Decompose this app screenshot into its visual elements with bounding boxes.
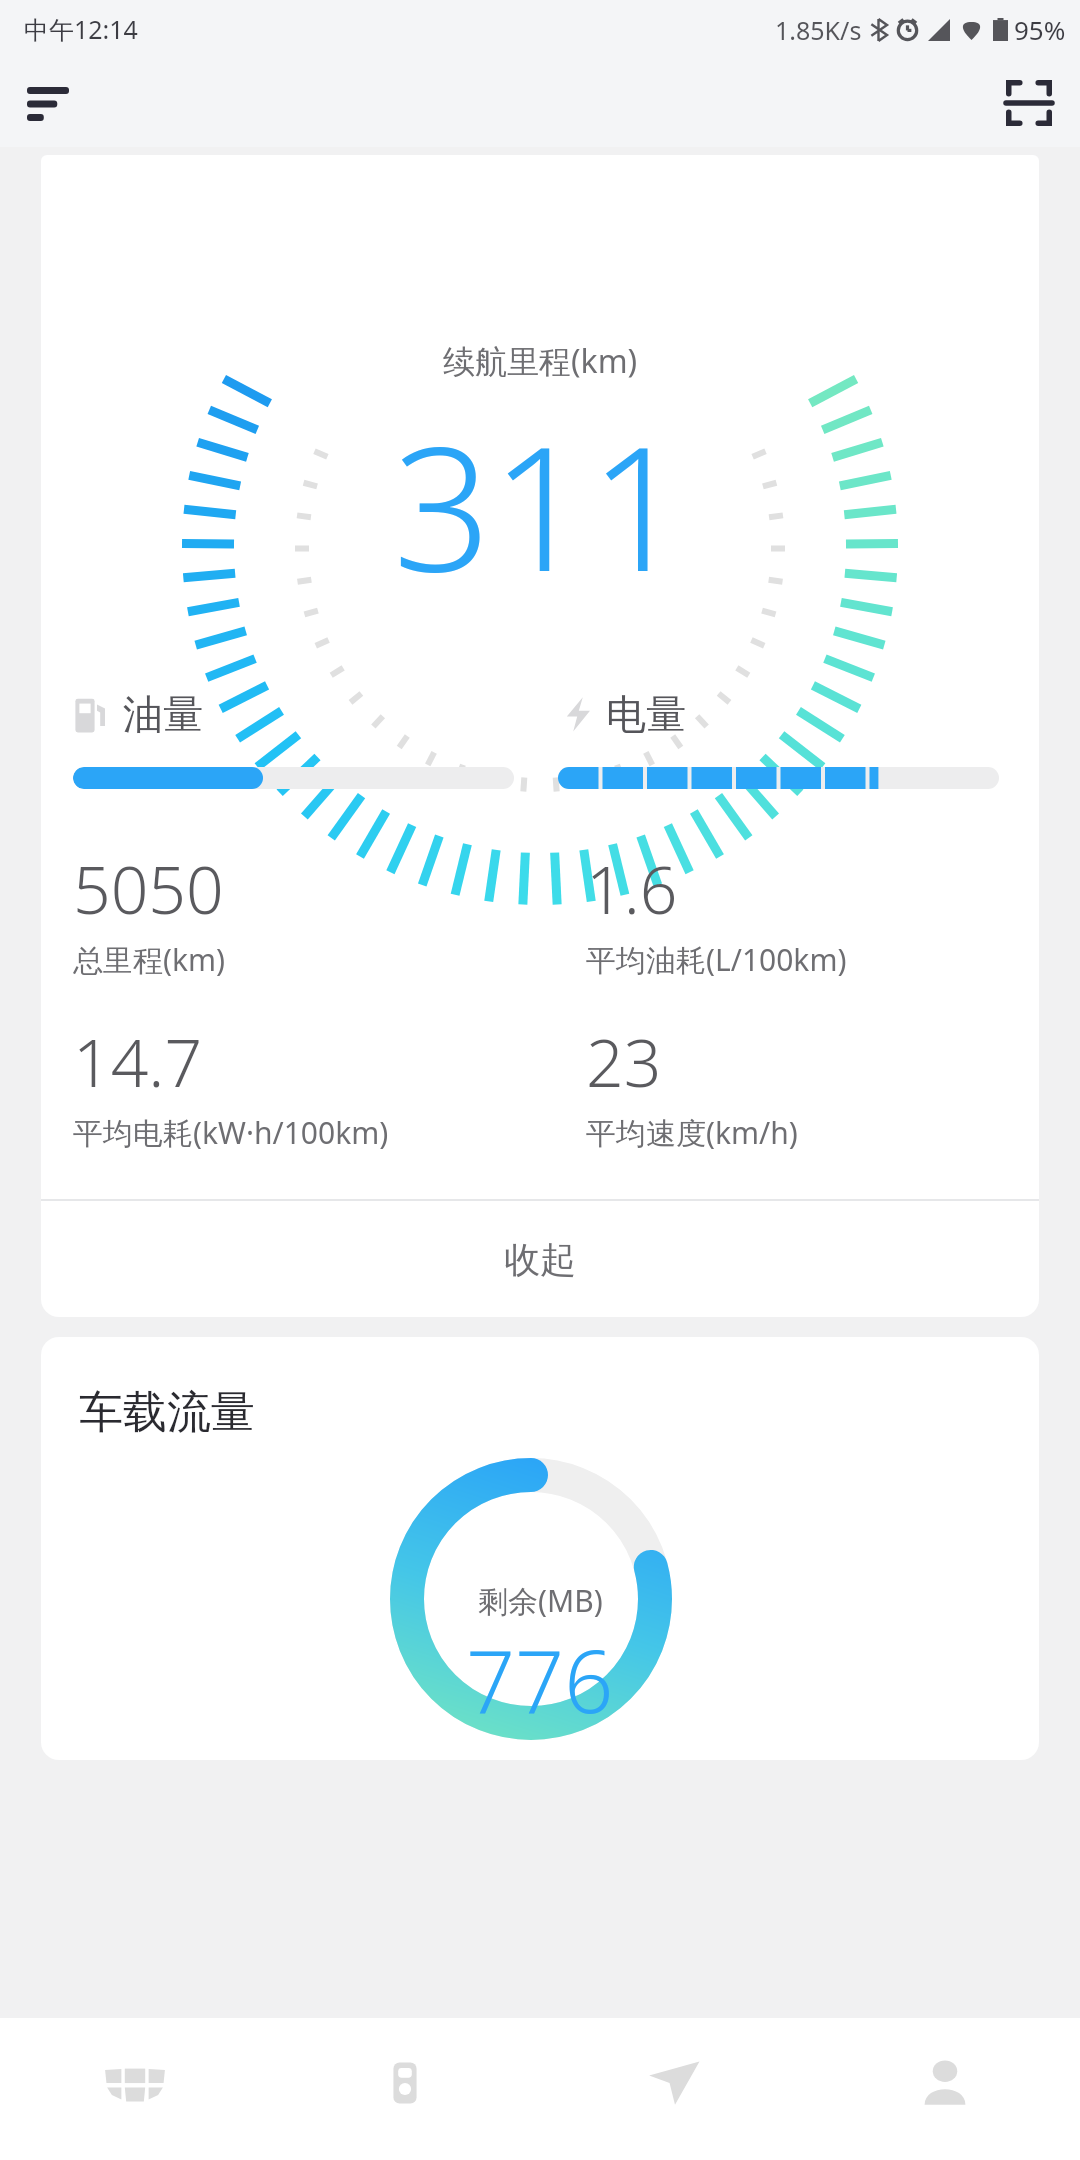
button[interactable]: Scan <box>998 72 1060 134</box>
staticText: 中午12:14 <box>24 12 138 46</box>
staticText: 平均电耗(kW·h/100km) <box>73 1112 389 1153</box>
button[interactable]: Navigation <box>540 2018 810 2160</box>
staticText: 5050 <box>73 843 224 933</box>
staticText: 收起 <box>504 1237 576 1282</box>
staticText: 23 <box>586 1016 662 1106</box>
staticText: 剩余(MB) <box>478 1580 603 1621</box>
button[interactable]: Menu <box>20 75 76 131</box>
button[interactable]: Profile <box>810 2018 1080 2160</box>
staticText: 总里程(km) <box>73 939 226 980</box>
staticText: 续航里程(km) <box>443 339 638 383</box>
button[interactable]: Remote <box>270 2018 540 2160</box>
staticText: 车载流量 <box>79 1385 255 1440</box>
staticText: 平均油耗(L/100km) <box>586 939 847 980</box>
staticText: 14.7 <box>73 1016 203 1106</box>
staticText: 1.85K/s <box>775 13 862 47</box>
button[interactable]: Vehicle <box>0 2018 270 2160</box>
staticText: 311 <box>393 387 688 621</box>
staticText: 95% <box>1014 12 1066 47</box>
staticText: 776 <box>466 1621 614 1738</box>
staticText: 平均速度(km/h) <box>586 1112 798 1153</box>
button[interactable]: 收起 <box>41 1201 1039 1317</box>
staticText: 油量 <box>123 689 203 739</box>
staticText: 电量 <box>606 689 686 739</box>
staticText: 1.6 <box>586 843 678 933</box>
